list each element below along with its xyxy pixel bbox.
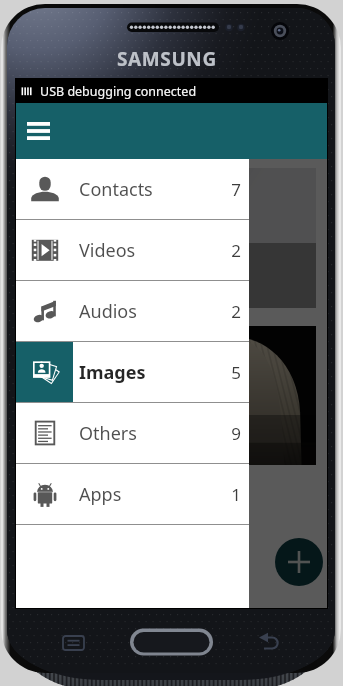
staticText: Images xyxy=(79,360,146,385)
staticText: XQ5ACKD.jpe xyxy=(41,264,147,287)
button[interactable]: Contacts xyxy=(16,159,249,608)
button[interactable]: XQ5ACKD.jpe xyxy=(27,168,316,308)
staticText: 7 xyxy=(231,178,241,201)
staticText: Contacts xyxy=(79,177,153,202)
staticText: SL8P3ND.jpeg xyxy=(41,429,154,452)
button[interactable]: Open navigation drawer xyxy=(18,111,58,151)
staticText: Videos xyxy=(79,238,136,263)
staticText: 5 xyxy=(231,361,241,384)
staticText: SAMSUNG xyxy=(117,46,217,72)
staticText: 2 xyxy=(231,300,241,323)
staticText: 2 xyxy=(231,239,241,262)
button[interactable]: Videos xyxy=(16,220,249,280)
staticText: USB debugging connected xyxy=(40,83,197,100)
button[interactable]: Contacts xyxy=(16,159,249,219)
staticText: Audios xyxy=(79,299,137,324)
button[interactable]: Apps xyxy=(16,464,249,524)
button[interactable]: Add xyxy=(275,538,323,586)
button[interactable]: Images xyxy=(16,342,249,402)
staticText: 1 xyxy=(231,483,241,506)
button[interactable]: SL8P3ND.jpeg xyxy=(27,326,316,465)
staticText: 9 xyxy=(231,422,241,445)
button[interactable]: Others xyxy=(16,403,249,463)
button[interactable]: Audios xyxy=(16,281,249,341)
staticText: Others xyxy=(79,421,137,446)
staticText: Apps xyxy=(79,482,122,507)
